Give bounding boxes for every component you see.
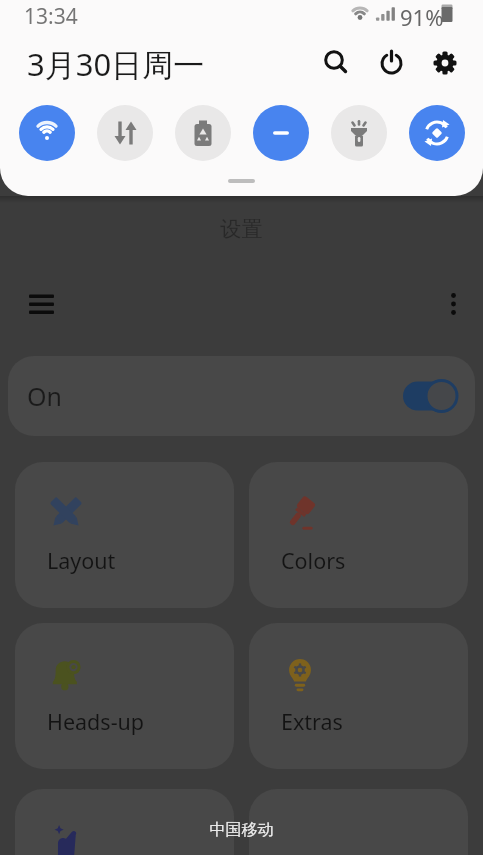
button[interactable]	[97, 105, 153, 161]
button[interactable]	[331, 105, 387, 161]
staticText: 91%	[400, 2, 444, 32]
button[interactable]	[430, 283, 478, 331]
staticText: Heads-up	[47, 707, 145, 736]
button[interactable]	[371, 42, 411, 82]
button[interactable]	[425, 42, 465, 82]
button[interactable]	[19, 105, 75, 161]
staticText: 3月30日周一	[27, 43, 205, 85]
button[interactable]	[17, 283, 65, 331]
button[interactable]: Heads-up	[15, 623, 234, 769]
button[interactable]	[409, 105, 465, 161]
button[interactable]: Layout	[15, 462, 234, 608]
staticText: Colors	[281, 546, 346, 575]
button[interactable]: On	[8, 356, 475, 436]
button[interactable]: Extras	[249, 623, 468, 769]
button[interactable]	[253, 105, 309, 161]
button[interactable]	[249, 789, 468, 855]
button[interactable]	[316, 42, 356, 82]
staticText: 中国移动	[0, 820, 483, 840]
button[interactable]	[15, 789, 234, 855]
staticText: Extras	[281, 707, 343, 736]
staticText: 13:34	[24, 2, 78, 31]
button[interactable]	[175, 105, 231, 161]
button[interactable]: Colors	[249, 462, 468, 608]
staticText: On	[27, 379, 62, 413]
staticText: Layout	[47, 546, 116, 575]
